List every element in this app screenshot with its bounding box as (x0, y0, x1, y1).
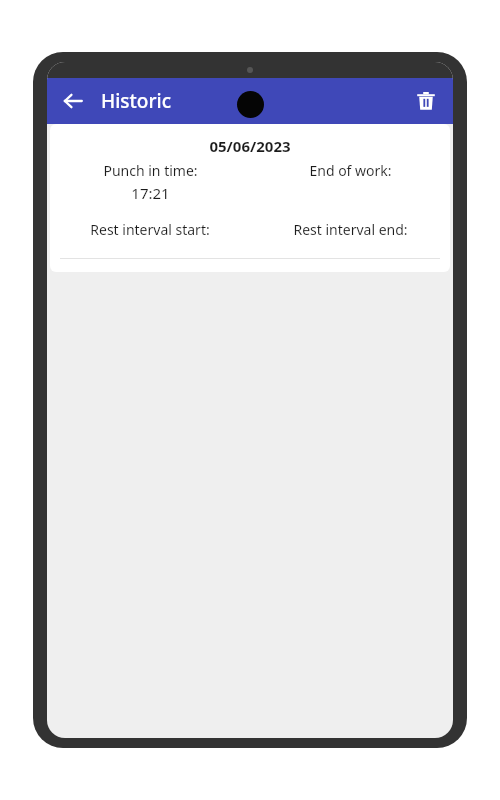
staticText: Historic (101, 88, 171, 114)
staticText: Rest interval end: (293, 220, 408, 239)
staticText: Punch in time: (103, 161, 198, 180)
button[interactable]: 05/06/2023 (50, 124, 450, 272)
staticText: 17:21 (131, 183, 170, 203)
staticText: 05/06/2023 (50, 136, 450, 156)
staticText: Rest interval start: (90, 220, 210, 239)
button[interactable]: Delete (405, 80, 447, 122)
button[interactable]: Back (53, 81, 93, 121)
staticText: End of work: (309, 161, 392, 180)
